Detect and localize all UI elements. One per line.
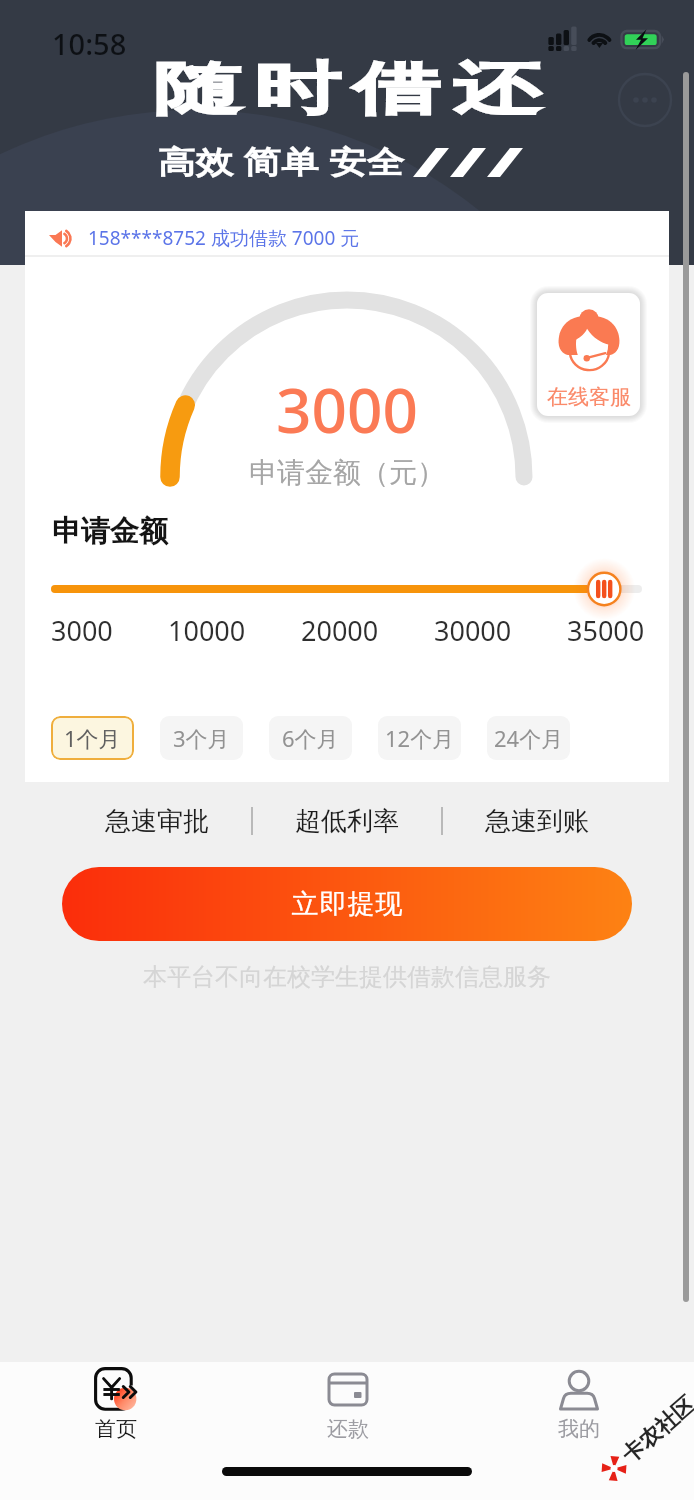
- button[interactable]: 1个月: [51, 716, 134, 760]
- button[interactable]: 在线客服: [537, 293, 640, 416]
- staticText: 首页: [95, 1416, 137, 1442]
- button[interactable]: 24个月: [487, 716, 570, 760]
- staticText: 20000: [301, 612, 379, 649]
- staticText: 30000: [434, 612, 512, 649]
- button[interactable]: 立即提现: [62, 867, 632, 941]
- staticText: 24个月: [494, 723, 564, 753]
- button[interactable]: 首页: [0, 1362, 232, 1442]
- staticText: 12个月: [385, 723, 455, 753]
- staticText: 158****8752 成功借款 7000 元: [88, 225, 360, 251]
- staticText: 在线客服: [547, 384, 631, 410]
- button[interactable]: 还款: [232, 1362, 463, 1442]
- staticText: 立即提现: [291, 887, 403, 921]
- button[interactable]: 3个月: [160, 716, 243, 760]
- staticText: 我的: [558, 1416, 600, 1442]
- staticText: 6个月: [282, 723, 339, 753]
- staticText: 申请金额: [52, 513, 168, 550]
- staticText: 10:58: [52, 24, 127, 63]
- staticText: 急速到账: [485, 805, 589, 838]
- staticText: 超低利率: [295, 805, 399, 838]
- staticText: 随时借还: [147, 54, 547, 125]
- staticText: 1个月: [64, 723, 121, 753]
- staticText: 本平台不向在校学生提供借款信息服务: [0, 962, 694, 992]
- staticText: 申请金额（元）: [249, 455, 445, 490]
- staticText: 3000: [276, 367, 418, 451]
- button[interactable]: 12个月: [378, 716, 461, 760]
- button[interactable]: 158****8752 成功借款 7000 元: [25, 211, 669, 265]
- staticText: 3000: [51, 612, 113, 649]
- button[interactable]: 6个月: [269, 716, 352, 760]
- staticText: 10000: [168, 612, 246, 649]
- button[interactable]: 我的: [463, 1362, 694, 1442]
- staticText: 急速审批: [105, 805, 209, 838]
- staticText: 卡农社区: [616, 1390, 694, 1469]
- staticText: 还款: [327, 1416, 369, 1442]
- staticText: 3个月: [173, 723, 230, 753]
- staticText: 35000: [567, 612, 645, 649]
- staticText: 高效 简单 安全: [158, 140, 405, 182]
